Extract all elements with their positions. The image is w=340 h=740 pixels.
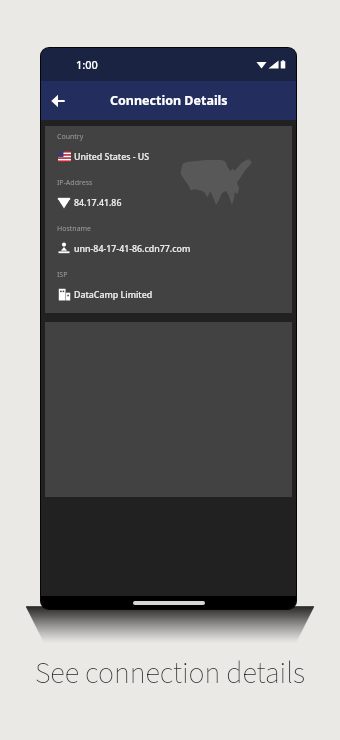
- staticText: 1:00: [76, 57, 98, 72]
- staticText: 84.17.41.86: [74, 197, 122, 209]
- staticText: Country: [57, 132, 84, 142]
- button[interactable]: Back: [45, 88, 71, 114]
- staticText: DataCamp Limited: [74, 289, 153, 301]
- staticText: IP-Address: [57, 178, 93, 188]
- staticText: unn-84-17-41-86.cdn77.com: [74, 243, 191, 255]
- staticText: United States - US: [74, 151, 150, 163]
- staticText: Hostname: [57, 224, 92, 234]
- staticText: See connection details: [0, 652, 340, 695]
- staticText: ISP: [57, 270, 68, 280]
- staticText: Connection Details: [110, 92, 228, 109]
